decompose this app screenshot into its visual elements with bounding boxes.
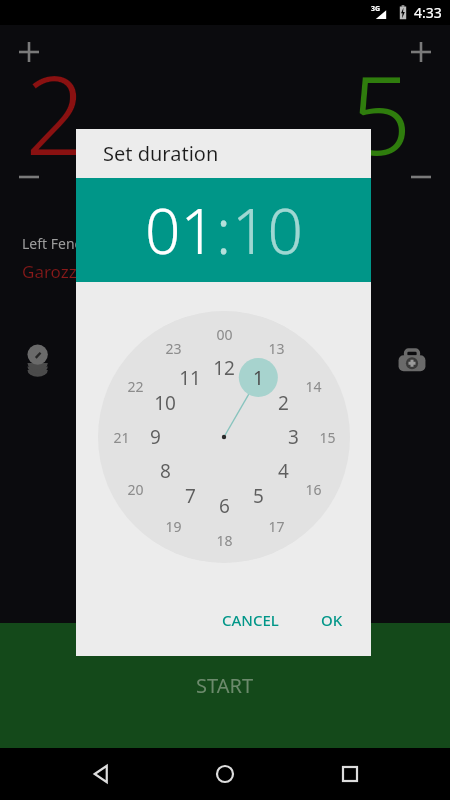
staticText: 5: [350, 40, 412, 187]
button[interactable]: Back: [77, 750, 125, 798]
staticText: 1: [253, 365, 264, 391]
staticText: OK: [321, 610, 343, 630]
staticText: 00: [216, 325, 233, 344]
staticText: 21: [113, 428, 130, 447]
staticText: 12: [213, 355, 235, 381]
staticText: 10: [154, 390, 176, 416]
button[interactable]: Decrease right score: [404, 160, 438, 194]
staticText: 6: [219, 493, 230, 519]
staticText: Garozzo: [22, 260, 87, 283]
staticText: :: [216, 188, 232, 272]
staticText: CANCEL: [222, 610, 279, 630]
button[interactable]: Decrease left score: [12, 160, 46, 194]
staticText: 2: [278, 390, 289, 416]
button[interactable]: OK: [311, 602, 353, 638]
button[interactable]: START: [0, 623, 450, 748]
staticText: Set duration: [103, 140, 219, 167]
staticText: 15: [319, 428, 336, 447]
staticText: 18: [216, 531, 233, 550]
staticText: 19: [165, 517, 182, 536]
button[interactable]: 10: [232, 188, 303, 272]
staticText: 16: [305, 480, 322, 499]
staticText: 4: [278, 458, 289, 484]
button[interactable]: 01: [145, 188, 216, 272]
staticText: START: [196, 672, 254, 699]
staticText: 22: [127, 377, 144, 396]
button[interactable]: Cards: [18, 337, 60, 379]
staticText: 20: [127, 480, 144, 499]
staticText: 2: [25, 40, 87, 187]
button[interactable]: Recents: [326, 750, 374, 798]
staticText: 7: [185, 483, 196, 509]
staticText: 9: [150, 424, 161, 450]
staticText: 11: [179, 365, 201, 391]
staticText: 14: [305, 377, 322, 396]
button[interactable]: CANCEL: [212, 602, 289, 638]
staticText: 3: [288, 424, 299, 450]
staticText: 8: [160, 458, 171, 484]
staticText: 3G: [371, 4, 381, 14]
button[interactable]: Increase left score: [12, 35, 46, 69]
staticText: 4:33: [414, 3, 442, 22]
button[interactable]: Home: [201, 750, 249, 798]
button[interactable]: Medical: [390, 339, 434, 383]
staticText: 23: [165, 339, 182, 358]
staticText: Left Fencer: [22, 234, 95, 253]
staticText: 5: [253, 483, 264, 509]
staticText: 13: [268, 339, 285, 358]
staticText: 17: [268, 517, 285, 536]
button[interactable]: Increase right score: [404, 35, 438, 69]
